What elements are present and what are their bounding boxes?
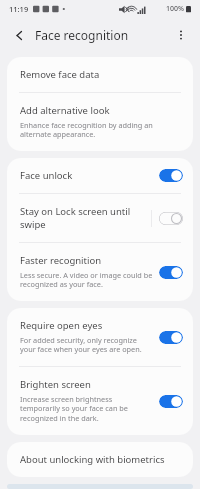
- button[interactable]: Switch on: [159, 169, 183, 182]
- staticText: Remove face data: [20, 68, 100, 81]
- staticText: Face unlock: [20, 169, 73, 182]
- staticText: Less secure. A video or image could be r…: [20, 270, 153, 290]
- staticText: 100%: [166, 4, 184, 14]
- staticText: 11:19: [9, 4, 29, 14]
- staticText: Brighten screen: [20, 378, 91, 391]
- button[interactable]: Stay on Lock screen until swipe: [7, 194, 193, 242]
- staticText: Add alternative look: [20, 104, 110, 117]
- button[interactable]: Switch on: [159, 331, 183, 344]
- button[interactable]: Face unlock: [7, 158, 193, 193]
- button[interactable]: About unlocking with biometrics: [7, 442, 193, 477]
- button[interactable]: Switch on: [159, 395, 183, 408]
- button[interactable]: Require open eyes: [7, 308, 193, 366]
- button[interactable]: Remove face data: [7, 57, 193, 92]
- staticText: Stay on Lock screen until swipe: [20, 205, 145, 231]
- button[interactable]: Faster recognition: [7, 243, 193, 301]
- button[interactable]: Brighten screen: [7, 367, 193, 435]
- button[interactable]: Add alternative look: [7, 93, 193, 151]
- button[interactable]: Switch off: [159, 212, 183, 225]
- staticText: About unlocking with biometrics: [20, 453, 165, 466]
- staticText: Increase screen brightness temporarily s…: [20, 394, 153, 424]
- staticText: Faster recognition: [20, 254, 102, 267]
- staticText: Enhance face recognition by adding an al…: [20, 120, 180, 140]
- staticText: Face recognition: [35, 27, 129, 43]
- button[interactable]: Switch on: [159, 266, 183, 279]
- button[interactable]: Back: [8, 24, 30, 46]
- staticText: Require open eyes: [20, 319, 103, 332]
- staticText: For added security, only recognize your …: [20, 335, 153, 355]
- button[interactable]: More options: [170, 24, 192, 46]
